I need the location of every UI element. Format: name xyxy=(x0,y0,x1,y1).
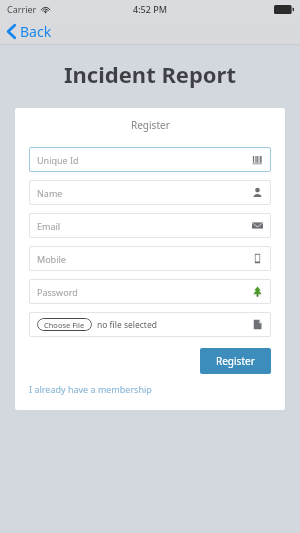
other: Password xyxy=(252,286,263,297)
button[interactable]: I already have a membership xyxy=(29,382,152,396)
button[interactable]: Email xyxy=(29,213,271,238)
other: Email xyxy=(252,220,263,231)
staticText: Register xyxy=(131,118,170,132)
staticText: Back xyxy=(20,22,52,41)
staticText: 4:52 PM xyxy=(133,3,167,15)
button[interactable]: Choose File xyxy=(37,318,92,331)
button[interactable]: Back xyxy=(0,19,60,44)
other: Name xyxy=(252,187,263,198)
staticText: Register xyxy=(216,354,255,368)
button[interactable]: Register xyxy=(200,348,271,374)
staticText: I already have a membership xyxy=(29,383,152,395)
button[interactable]: Password xyxy=(29,279,271,304)
staticText: Mobile xyxy=(37,253,252,265)
button[interactable]: Mobile xyxy=(29,246,271,271)
other: Scan barcode xyxy=(252,154,263,165)
other: Mobile xyxy=(252,253,263,264)
staticText: no file selected xyxy=(97,319,252,331)
staticText: Incident Report xyxy=(64,59,236,89)
staticText: Unique Id xyxy=(37,154,252,166)
staticText: Email xyxy=(37,220,252,232)
button[interactable]: Unique Id xyxy=(29,147,271,172)
staticText: Name xyxy=(37,187,252,199)
button[interactable]: Name xyxy=(29,180,271,205)
button[interactable]: Choose File xyxy=(29,312,271,337)
staticText: Carrier xyxy=(7,3,37,15)
staticText: Password xyxy=(37,286,252,298)
other: Attachment xyxy=(252,319,263,330)
staticText: Choose File xyxy=(44,320,85,330)
